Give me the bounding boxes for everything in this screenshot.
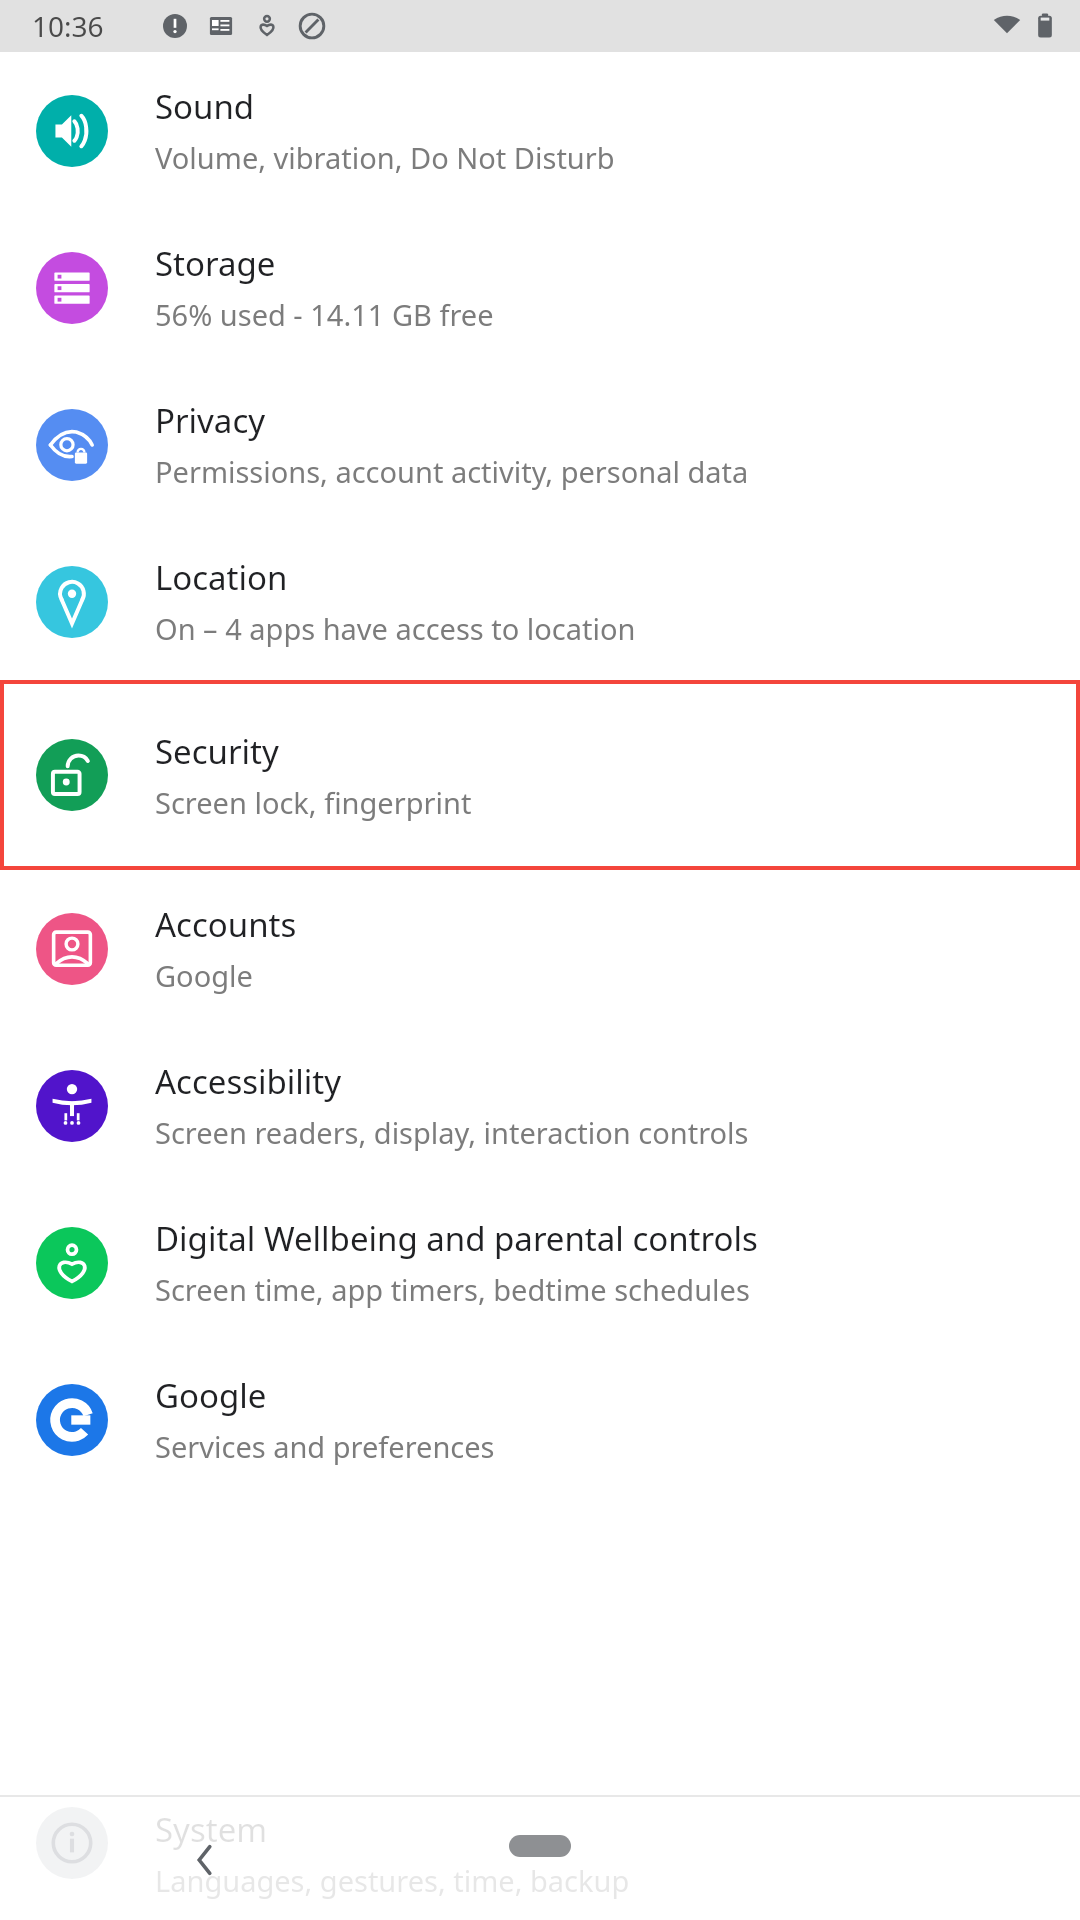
staticText: Screen readers, display, interaction con… [155,1113,749,1152]
staticText: On – 4 apps have access to location [155,609,636,648]
button[interactable]: Privacy [0,366,1080,523]
staticText: Accounts [155,902,297,947]
staticText: Google [155,956,253,995]
staticText: Storage [155,241,276,286]
button[interactable]: Digital Wellbeing and parental controls [0,1184,1080,1341]
staticText: Screen time, app timers, bedtime schedul… [155,1270,750,1309]
staticText: Volume, vibration, Do Not Disturb [155,138,615,177]
staticText: Privacy [155,398,266,443]
staticText: Google [155,1373,267,1418]
staticText: 56% used - 14.11 GB free [155,295,494,334]
button[interactable]: Storage [0,209,1080,366]
button[interactable]: Sound [0,52,1080,209]
button[interactable]: Security [0,680,1080,870]
button[interactable]: Location [0,523,1080,680]
staticText: Location [155,555,288,600]
button[interactable]: Google [0,1341,1080,1498]
staticText: Screen lock, fingerprint [155,783,472,822]
staticText: Digital Wellbeing and parental controls [155,1216,758,1261]
staticText: Sound [155,84,255,129]
staticText: Services and preferences [155,1427,495,1466]
button[interactable]: Accounts [0,870,1080,1027]
staticText: 10:36 [32,7,104,45]
button[interactable]: System [0,1807,1080,1900]
button[interactable]: Home [509,1835,571,1857]
staticText: Languages, gestures, time, backup [155,1861,630,1900]
staticText: Accessibility [155,1059,342,1104]
button[interactable]: Back [170,1825,240,1895]
staticText: Security [155,729,279,774]
staticText: System [155,1807,268,1852]
staticText: Permissions, account activity, personal … [155,452,749,491]
button[interactable]: Accessibility [0,1027,1080,1184]
